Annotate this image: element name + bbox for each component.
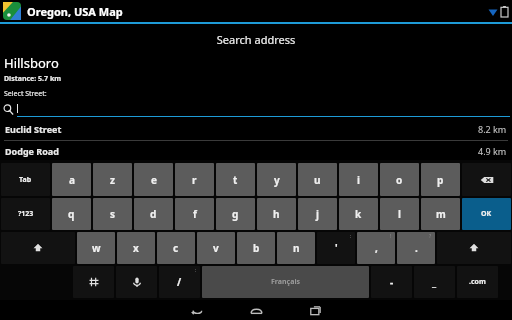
staticText: : xyxy=(350,233,352,240)
staticText: ! xyxy=(390,233,392,240)
staticText: m xyxy=(436,207,446,221)
staticText: k xyxy=(355,207,362,221)
button[interactable]: o xyxy=(380,163,419,196)
button[interactable]: y xyxy=(257,163,296,196)
button[interactable]: Euclid Street xyxy=(0,117,512,140)
button[interactable]: j xyxy=(298,198,337,230)
staticText: , xyxy=(375,241,378,255)
button[interactable]: ' xyxy=(317,232,355,264)
staticText: e xyxy=(151,173,157,187)
button[interactable]: Home xyxy=(243,300,269,320)
staticText: t xyxy=(233,173,238,187)
button[interactable]: v xyxy=(197,232,235,264)
button[interactable]: .com xyxy=(457,266,498,298)
staticText: Tab xyxy=(19,175,32,185)
staticText: v xyxy=(213,241,219,255)
button[interactable]: Search xyxy=(0,101,512,117)
staticText: 4.9 km xyxy=(478,145,507,157)
button[interactable]: s xyxy=(93,198,132,230)
button[interactable]: OK xyxy=(462,198,511,230)
staticText: f xyxy=(193,207,197,221)
staticText: - xyxy=(390,275,394,289)
staticText: j xyxy=(316,207,319,221)
button[interactable]: x xyxy=(117,232,155,264)
staticText: : xyxy=(195,267,197,274)
button[interactable]: h xyxy=(257,198,296,230)
button[interactable]: p xyxy=(421,163,460,196)
staticText: r xyxy=(192,173,197,187)
button[interactable]: t xyxy=(216,163,255,196)
staticText: Select Street: xyxy=(4,89,47,99)
button[interactable]: l xyxy=(380,198,419,230)
staticText: d xyxy=(150,207,157,221)
staticText: Search address xyxy=(0,32,512,47)
button[interactable]: Shift xyxy=(437,232,511,264)
staticText: s xyxy=(110,207,116,221)
button[interactable]: e xyxy=(134,163,173,196)
staticText: Hillsboro xyxy=(4,54,59,72)
staticText: Euclid Street xyxy=(5,123,62,135)
button[interactable]: k xyxy=(339,198,378,230)
button[interactable]: . xyxy=(397,232,435,264)
button[interactable]: Tab xyxy=(1,163,50,196)
button[interactable]: Français xyxy=(202,266,369,298)
staticText: ' xyxy=(335,241,338,255)
staticText: g xyxy=(232,207,239,221)
button[interactable]: - xyxy=(371,266,412,298)
button[interactable]: Dodge Road xyxy=(0,141,512,160)
staticText: ? xyxy=(429,233,432,240)
staticText: h xyxy=(273,207,280,221)
button[interactable]: w xyxy=(77,232,115,264)
button[interactable]: g xyxy=(216,198,255,230)
staticText: ?123 xyxy=(18,209,34,219)
button[interactable]: Keyboard settings xyxy=(73,266,114,298)
staticText: 8.2 km xyxy=(478,123,507,135)
staticText: x xyxy=(133,241,139,255)
button[interactable]: f xyxy=(175,198,214,230)
staticText: b xyxy=(253,241,260,255)
staticText: u xyxy=(314,173,321,187)
staticText: Français xyxy=(271,277,300,287)
staticText: OK xyxy=(481,209,492,219)
staticText: y xyxy=(274,173,280,187)
staticText: . xyxy=(415,241,418,255)
button[interactable]: c xyxy=(157,232,195,264)
staticText: i xyxy=(357,173,360,187)
button[interactable]: Back xyxy=(183,300,209,320)
staticText: a xyxy=(69,173,75,187)
staticText: .com xyxy=(469,277,486,287)
staticText: Dodge Road xyxy=(5,145,59,157)
button[interactable]: Recents xyxy=(303,300,329,320)
staticText: n xyxy=(293,241,300,255)
other: Search xyxy=(3,104,14,115)
button[interactable]: ?123 xyxy=(1,198,50,230)
button[interactable]: m xyxy=(421,198,460,230)
button[interactable]: u xyxy=(298,163,337,196)
button[interactable]: z xyxy=(93,163,132,196)
staticText: Oregon, USA Map xyxy=(27,4,123,19)
staticText: Distance: 5.7 km xyxy=(4,74,62,84)
button[interactable]: Shift xyxy=(1,232,75,264)
staticText: c xyxy=(173,241,179,255)
button[interactable]: Voice input xyxy=(116,266,157,298)
staticText: _ xyxy=(432,275,437,289)
button[interactable]: _ xyxy=(414,266,455,298)
staticText: / xyxy=(177,275,182,289)
button[interactable]: n xyxy=(277,232,315,264)
staticText: l xyxy=(398,207,401,221)
button[interactable]: Backspace xyxy=(462,163,511,196)
staticText: z xyxy=(110,173,115,187)
button[interactable]: i xyxy=(339,163,378,196)
staticText: p xyxy=(437,173,444,187)
staticText: q xyxy=(68,207,75,221)
staticText: w xyxy=(92,241,101,255)
button[interactable]: d xyxy=(134,198,173,230)
button[interactable]: q xyxy=(52,198,91,230)
button[interactable]: / xyxy=(159,266,200,298)
button[interactable]: r xyxy=(175,163,214,196)
staticText: o xyxy=(396,173,403,187)
button[interactable]: b xyxy=(237,232,275,264)
button[interactable]: a xyxy=(52,163,91,196)
button[interactable]: , xyxy=(357,232,395,264)
